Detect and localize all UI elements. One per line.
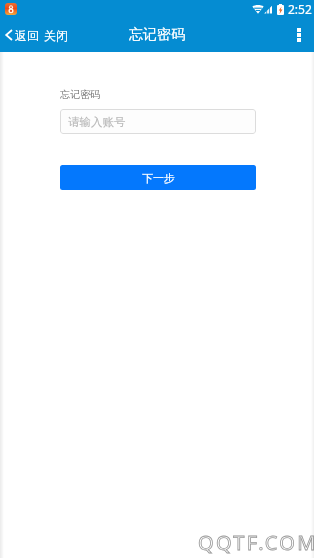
staticText: 关闭: [44, 28, 68, 43]
staticText: 忘记密码: [60, 88, 100, 101]
staticText: 忘记密码: [129, 26, 185, 44]
staticText: QQTF.COM: [198, 529, 314, 556]
button[interactable]: 下一步: [60, 165, 256, 190]
button[interactable]: 请输入账号: [60, 109, 256, 134]
staticText: QQTF.COM: [198, 529, 300, 556]
staticText: 请输入账号: [68, 115, 126, 129]
staticText: 2:52: [288, 1, 312, 17]
button[interactable]: More options: [284, 18, 314, 52]
button[interactable]: 返回: [0, 18, 41, 52]
staticText: 返回: [15, 28, 39, 43]
button[interactable]: 关闭: [41, 18, 71, 52]
staticText: 下一步: [142, 171, 175, 185]
